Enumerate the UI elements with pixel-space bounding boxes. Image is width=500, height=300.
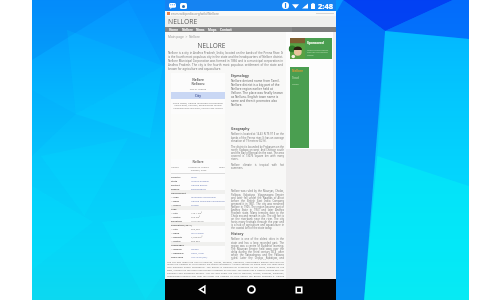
staticText: Learn more about the city of Nellore tod… [307, 48, 331, 57]
staticText: Location in Andhra Pradesh, India [188, 166, 209, 172]
staticText: Time zone [171, 255, 184, 258]
staticText: • Density [171, 235, 183, 238]
staticText: en.m.wikipedia.org/wiki/Nellore [171, 12, 219, 16]
staticText: • Rank [171, 231, 180, 234]
staticText: Penna River, Narthaki, Ranganayaka Templ… [171, 104, 225, 107]
staticText: • Body [171, 199, 180, 202]
staticText: News [196, 28, 205, 32]
staticText: Home [169, 28, 179, 32]
staticText: Languages [171, 243, 184, 246]
staticText: Nellore [171, 78, 225, 82]
staticText: Nelapattu Bird Sanctuary, Pulicat Lake N… [171, 107, 225, 110]
staticText: Contact [220, 28, 232, 32]
button[interactable]: Back [191, 279, 213, 300]
staticText: 225 km² [191, 215, 201, 218]
staticText: 4th in state [191, 231, 204, 234]
staticText: • City [171, 211, 178, 214]
staticText: 505,258 [191, 227, 200, 230]
staticText: • Official [171, 247, 182, 250]
staticText: Area [171, 207, 177, 210]
staticText: India [191, 175, 197, 178]
staticText: • Type [171, 195, 179, 198]
staticText: Region [171, 187, 180, 190]
staticText: India [219, 166, 225, 169]
staticText: 600,869 [191, 239, 200, 242]
staticText: 3,400/km² [191, 235, 203, 238]
staticText: Nellore [292, 69, 303, 73]
staticText: Nellore is a city in Andhra Pradesh, Ind… [168, 51, 283, 71]
button[interactable]: Recent apps [288, 279, 310, 300]
staticText: Geography [231, 126, 250, 131]
staticText: Travel [292, 76, 300, 80]
staticText: NELLORE [168, 17, 198, 26]
staticText: The city was under the rule of Mauryas, … [167, 260, 284, 278]
staticText: • City [171, 227, 178, 230]
staticText: Sponsored [307, 41, 324, 45]
staticText: Sridevi [191, 203, 199, 206]
staticText: Population (2011) [171, 223, 192, 226]
staticText: 19 m (62 ft) [191, 219, 204, 222]
staticText: Nellore is located at 14.43 N 79.97 E on… [231, 132, 284, 169]
staticText: City in Andhra [171, 87, 225, 90]
staticText: Rayalaseema [191, 187, 206, 190]
staticText: Nellore [182, 28, 193, 32]
staticText: Municipal Corporation [191, 195, 217, 198]
staticText: Etymology [231, 73, 249, 78]
staticText: Tamil, Urdu [191, 251, 204, 254]
staticText: Guide [292, 82, 299, 85]
staticText: 149.1 km² [191, 211, 203, 214]
staticText: Andhra Pradesh [191, 179, 210, 182]
staticText: Nellore derived name from Tamil. Nellore… [231, 79, 284, 107]
staticText: Elevation [171, 219, 183, 222]
staticText: Nellore district [191, 183, 208, 186]
staticText: Nellooru [171, 82, 225, 86]
staticText: Nellore is one of the oldest cities in t… [231, 237, 284, 260]
staticText: NELLORE [168, 41, 255, 50]
staticText: Clock Tower, Nellore Municipal Corporati… [171, 101, 225, 104]
staticText: Nellore [171, 166, 179, 169]
button[interactable]: Nellore [290, 67, 309, 148]
staticText: • Metro [171, 239, 181, 242]
staticText: • Regional [171, 251, 184, 254]
staticText: History [231, 231, 244, 236]
staticText: Telugu [191, 247, 199, 250]
staticText: Main page > Nellore [168, 35, 200, 39]
staticText: Maps [208, 28, 217, 32]
staticText: Nellore was ruled by the Mauryas, Cholas… [231, 189, 284, 229]
staticText: • Mayor [171, 203, 181, 206]
staticText: City [195, 94, 201, 98]
button[interactable]: Home [240, 279, 262, 300]
staticText: Country [171, 175, 181, 178]
button[interactable]: Sponsored [290, 38, 332, 59]
staticText: Nellore Municipal Corporation [191, 199, 225, 202]
staticText: Nellore [171, 160, 225, 164]
staticText: State [171, 179, 178, 182]
staticText: UTC+5:30 (IST) [191, 255, 208, 258]
staticText: • Metro [171, 215, 181, 218]
staticText: 2:48 [318, 1, 333, 11]
staticText: District [171, 183, 180, 186]
staticText: Government [171, 191, 186, 194]
